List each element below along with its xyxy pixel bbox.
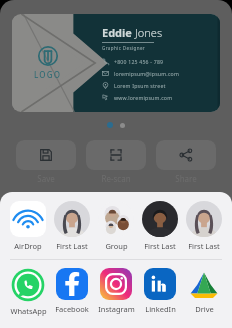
button[interactable]: First Last xyxy=(139,201,181,251)
staticText: Eddie xyxy=(102,25,132,40)
staticText: LOGO xyxy=(34,69,62,80)
button[interactable]: Group xyxy=(95,201,137,251)
button[interactable]: LinkedIn xyxy=(139,268,181,314)
staticText: Drive xyxy=(195,304,214,314)
button[interactable]: First Last xyxy=(183,201,225,251)
staticText: loremipsum@ipsum.com xyxy=(114,70,179,77)
staticText: First Last xyxy=(188,241,220,251)
button[interactable]: Facebook xyxy=(51,268,93,314)
staticText: First Last xyxy=(144,241,176,251)
staticText: Share xyxy=(175,173,197,184)
staticText: www.loremipsum.com xyxy=(114,94,173,101)
staticText: WhatsApp xyxy=(10,306,47,316)
button[interactable]: WhatsApp xyxy=(7,268,49,316)
button[interactable]: Instagram xyxy=(95,268,137,314)
staticText: Group xyxy=(105,241,128,251)
staticText: Jones xyxy=(135,25,163,40)
staticText: Save xyxy=(37,173,55,184)
staticText: Facebook xyxy=(55,304,89,314)
staticText: LinkedIn xyxy=(145,304,176,314)
button[interactable]: Re-scan xyxy=(86,140,146,184)
button[interactable]: Save xyxy=(16,140,76,184)
staticText: First Last xyxy=(56,241,88,251)
staticText: AirDrop xyxy=(14,241,42,251)
button[interactable]: Page 1 xyxy=(107,122,113,128)
button[interactable]: LOGO xyxy=(12,14,220,112)
button[interactable]: Share xyxy=(156,140,216,184)
button[interactable]: First Last xyxy=(51,201,93,251)
button[interactable]: Page 2 xyxy=(120,123,125,128)
staticText: Lorem Ipsum street xyxy=(114,82,166,89)
staticText: +800 125 456 - 789 xyxy=(114,58,164,65)
button[interactable]: Drive xyxy=(183,268,225,314)
staticText: Instagram xyxy=(98,304,135,314)
staticText: Re-scan xyxy=(101,173,131,184)
staticText: Graphic Designer xyxy=(102,45,146,51)
button[interactable]: AirDrop xyxy=(7,201,49,251)
